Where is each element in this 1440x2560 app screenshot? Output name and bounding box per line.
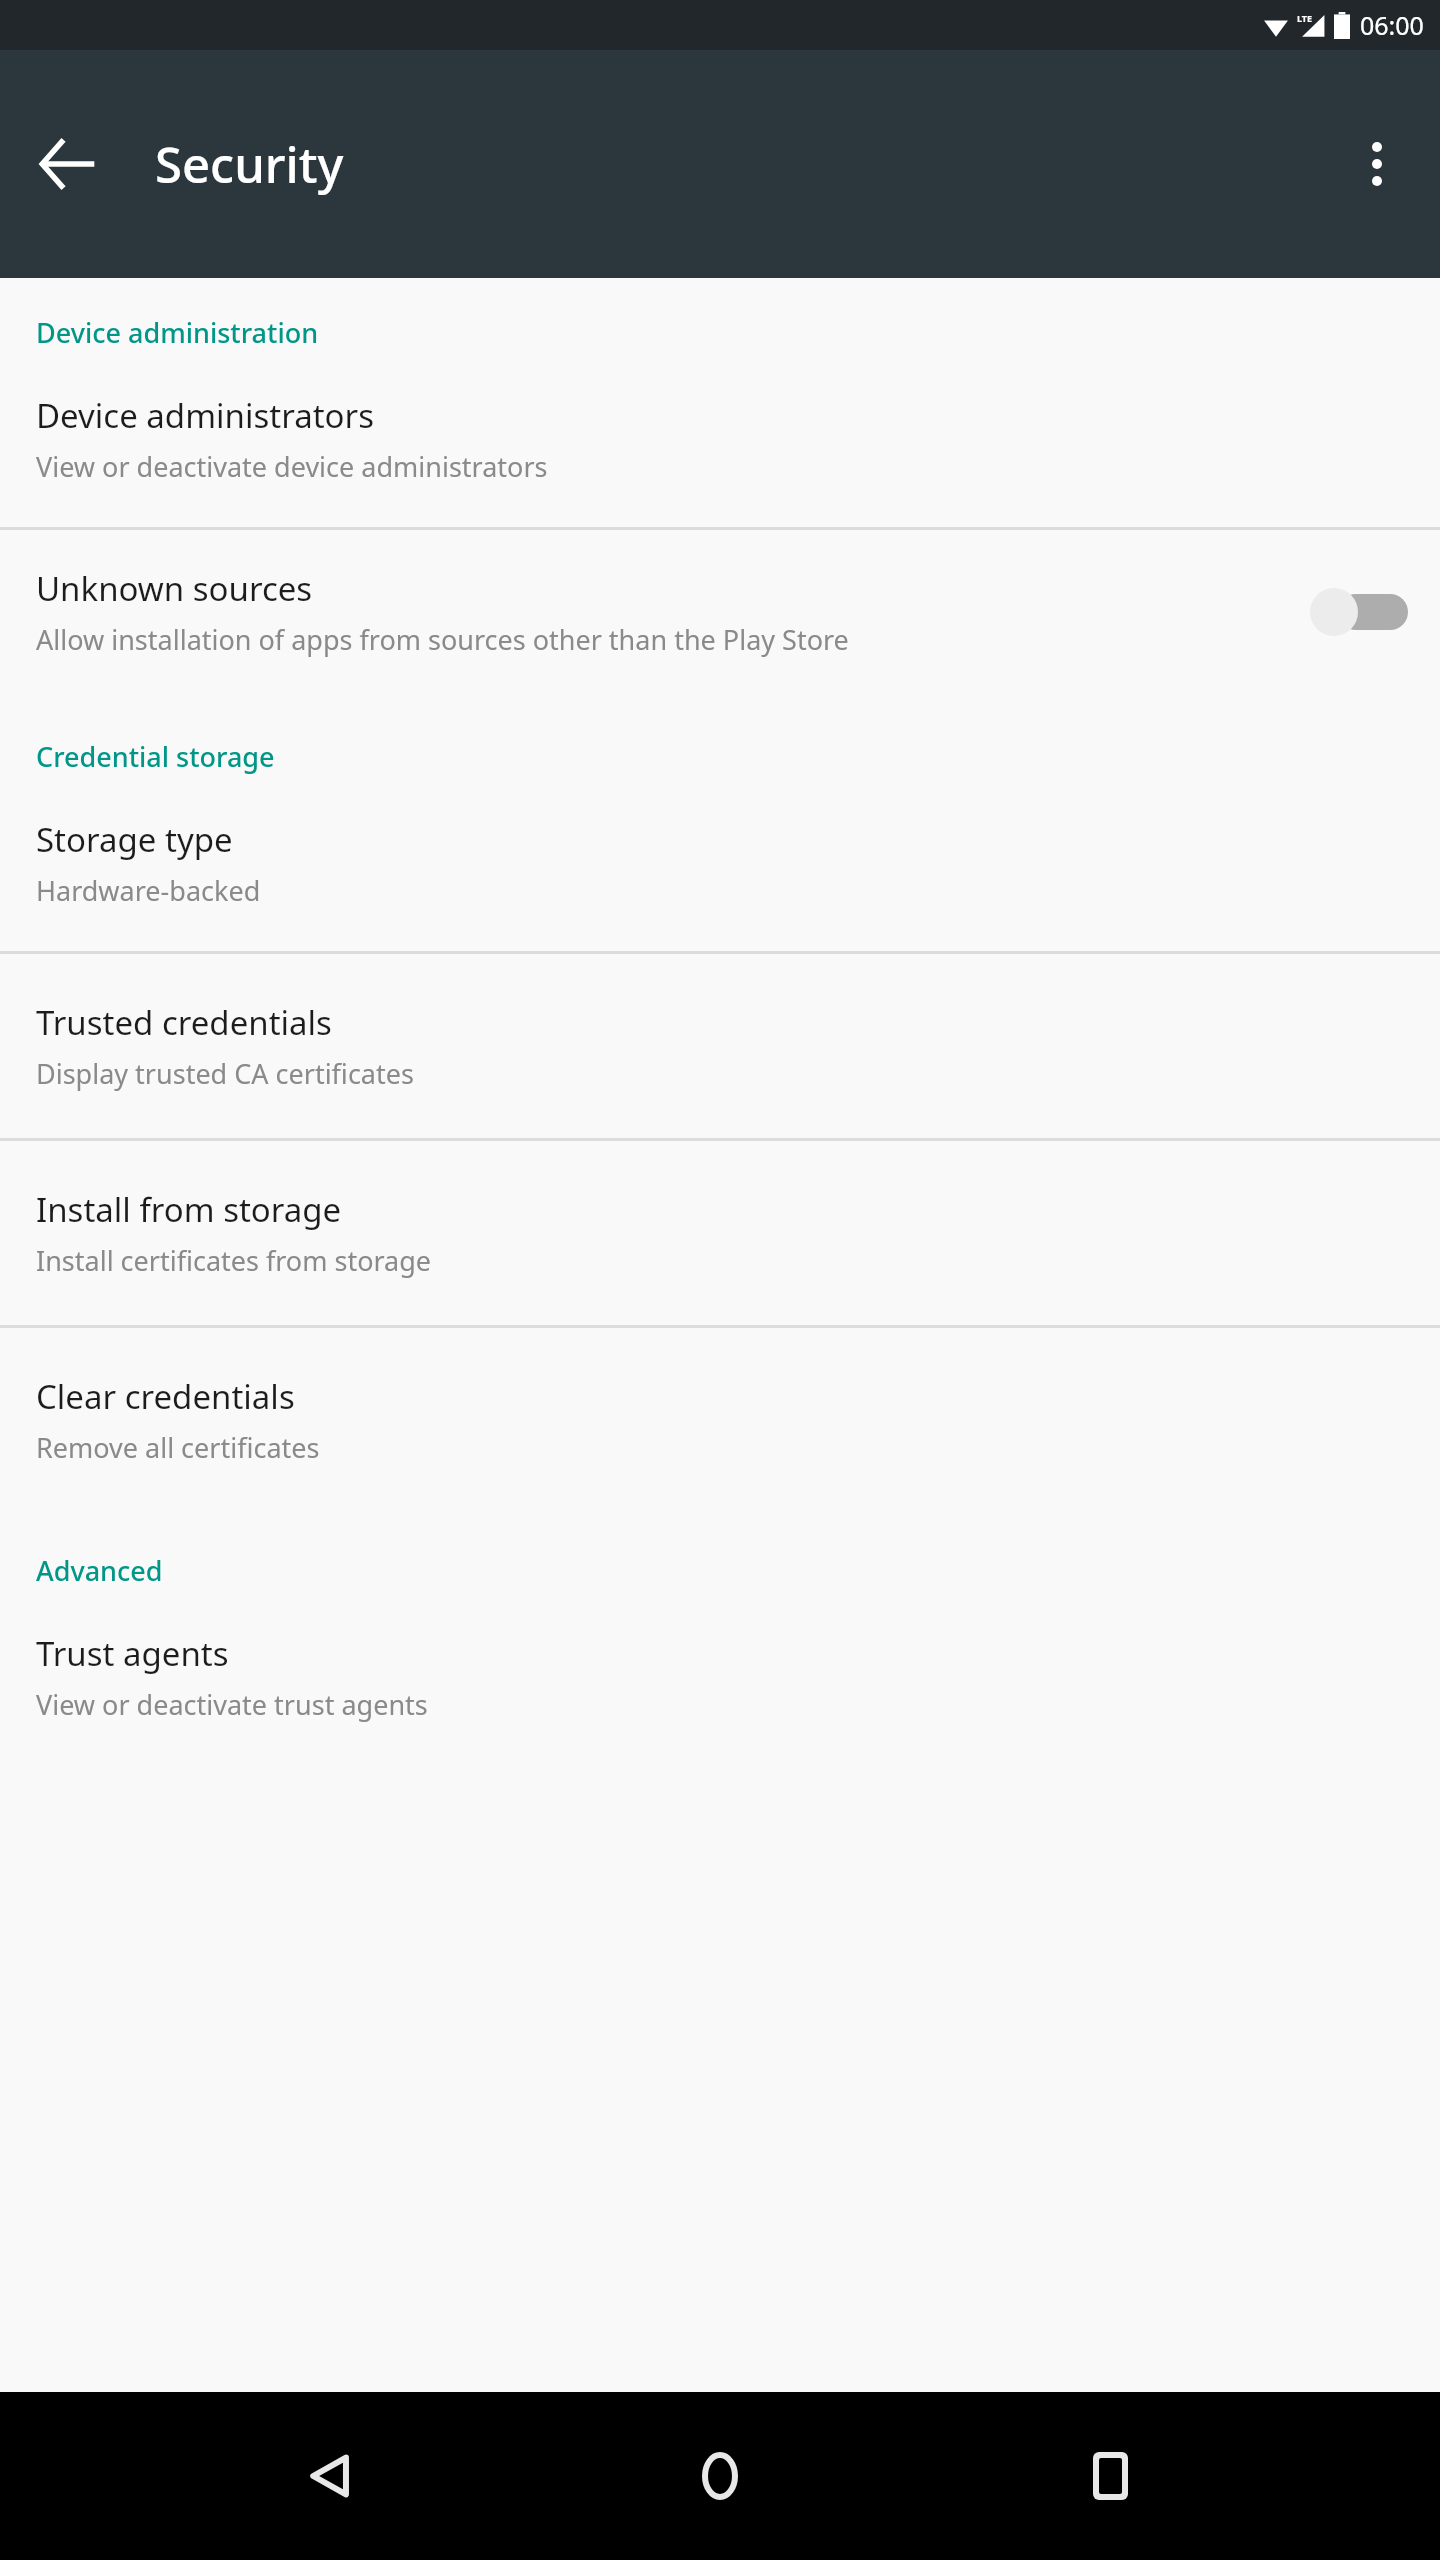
staticText: View or deactivate device administrators [36,448,548,485]
button[interactable]: Back [20,116,116,212]
button[interactable]: Install from storage [0,1141,1440,1325]
staticText: Install from storage [36,1187,342,1232]
staticText: Remove all certificates [36,1429,320,1466]
button[interactable]: Back [270,2416,390,2536]
staticText: LTE [1297,12,1313,24]
staticText: Trusted credentials [36,1000,332,1045]
button[interactable]: Unknown sources [0,530,1440,698]
button[interactable]: Unknown sources toggle [1310,581,1410,643]
button[interactable]: Recent apps [1050,2416,1170,2536]
button[interactable]: Trusted credentials [0,954,1440,1138]
staticText: Display trusted CA certificates [36,1055,414,1092]
staticText: Trust agents [36,1631,229,1676]
staticText: Install certificates from storage [36,1242,432,1279]
button[interactable]: More options [1332,119,1422,209]
staticText: Clear credentials [36,1374,295,1419]
staticText: Hardware-backed [36,872,261,909]
staticText: Device administration [36,314,319,351]
button[interactable]: Device administrators [0,373,1440,527]
staticText: Allow installation of apps from sources … [36,621,849,658]
staticText: Device administrators [36,393,374,438]
staticText: Advanced [36,1552,163,1589]
button[interactable]: Home [660,2416,780,2536]
staticText: Security [155,131,344,198]
staticText: Credential storage [36,738,275,775]
staticText: Unknown sources [36,566,313,611]
staticText: View or deactivate trust agents [36,1686,428,1723]
staticText: Storage type [36,817,233,862]
staticText: 06:00 [1360,8,1424,42]
button[interactable]: Storage type [0,797,1440,951]
button[interactable]: Clear credentials [0,1328,1440,1512]
button[interactable]: Trust agents [0,1611,1440,1765]
